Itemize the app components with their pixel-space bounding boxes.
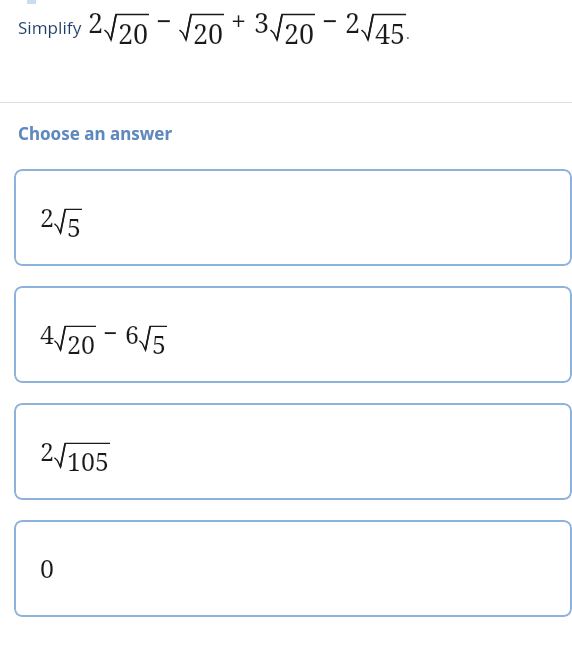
staticText: 4	[40, 317, 54, 351]
staticText: 6	[125, 317, 139, 351]
staticText: 20	[67, 327, 95, 355]
staticText: +	[231, 2, 247, 39]
staticText: 5	[67, 210, 81, 238]
button[interactable]: 2 root 5	[14, 169, 572, 266]
staticText: −	[322, 2, 338, 39]
staticText: .	[406, 24, 410, 43]
button[interactable]: 0	[14, 520, 572, 617]
staticText: 2	[88, 4, 104, 41]
staticText: 2	[40, 200, 54, 234]
staticText: 3	[254, 4, 270, 41]
staticText: Simplify	[18, 16, 82, 39]
button[interactable]: 2 root 105	[14, 403, 572, 500]
staticText: −	[103, 315, 118, 349]
staticText: 2	[40, 434, 54, 468]
staticText: 2	[345, 4, 361, 41]
staticText: 20	[118, 15, 149, 45]
staticText: 5	[152, 327, 166, 355]
staticText: 105	[67, 444, 109, 472]
staticText: 20	[193, 15, 224, 45]
staticText: 0	[40, 551, 54, 585]
staticText: 20	[284, 15, 315, 45]
staticText: Choose an answer	[18, 122, 173, 145]
staticText: −	[156, 2, 172, 39]
staticText: 45	[375, 15, 406, 45]
button[interactable]: 4 root 20 minus 6 root 5	[14, 286, 572, 383]
